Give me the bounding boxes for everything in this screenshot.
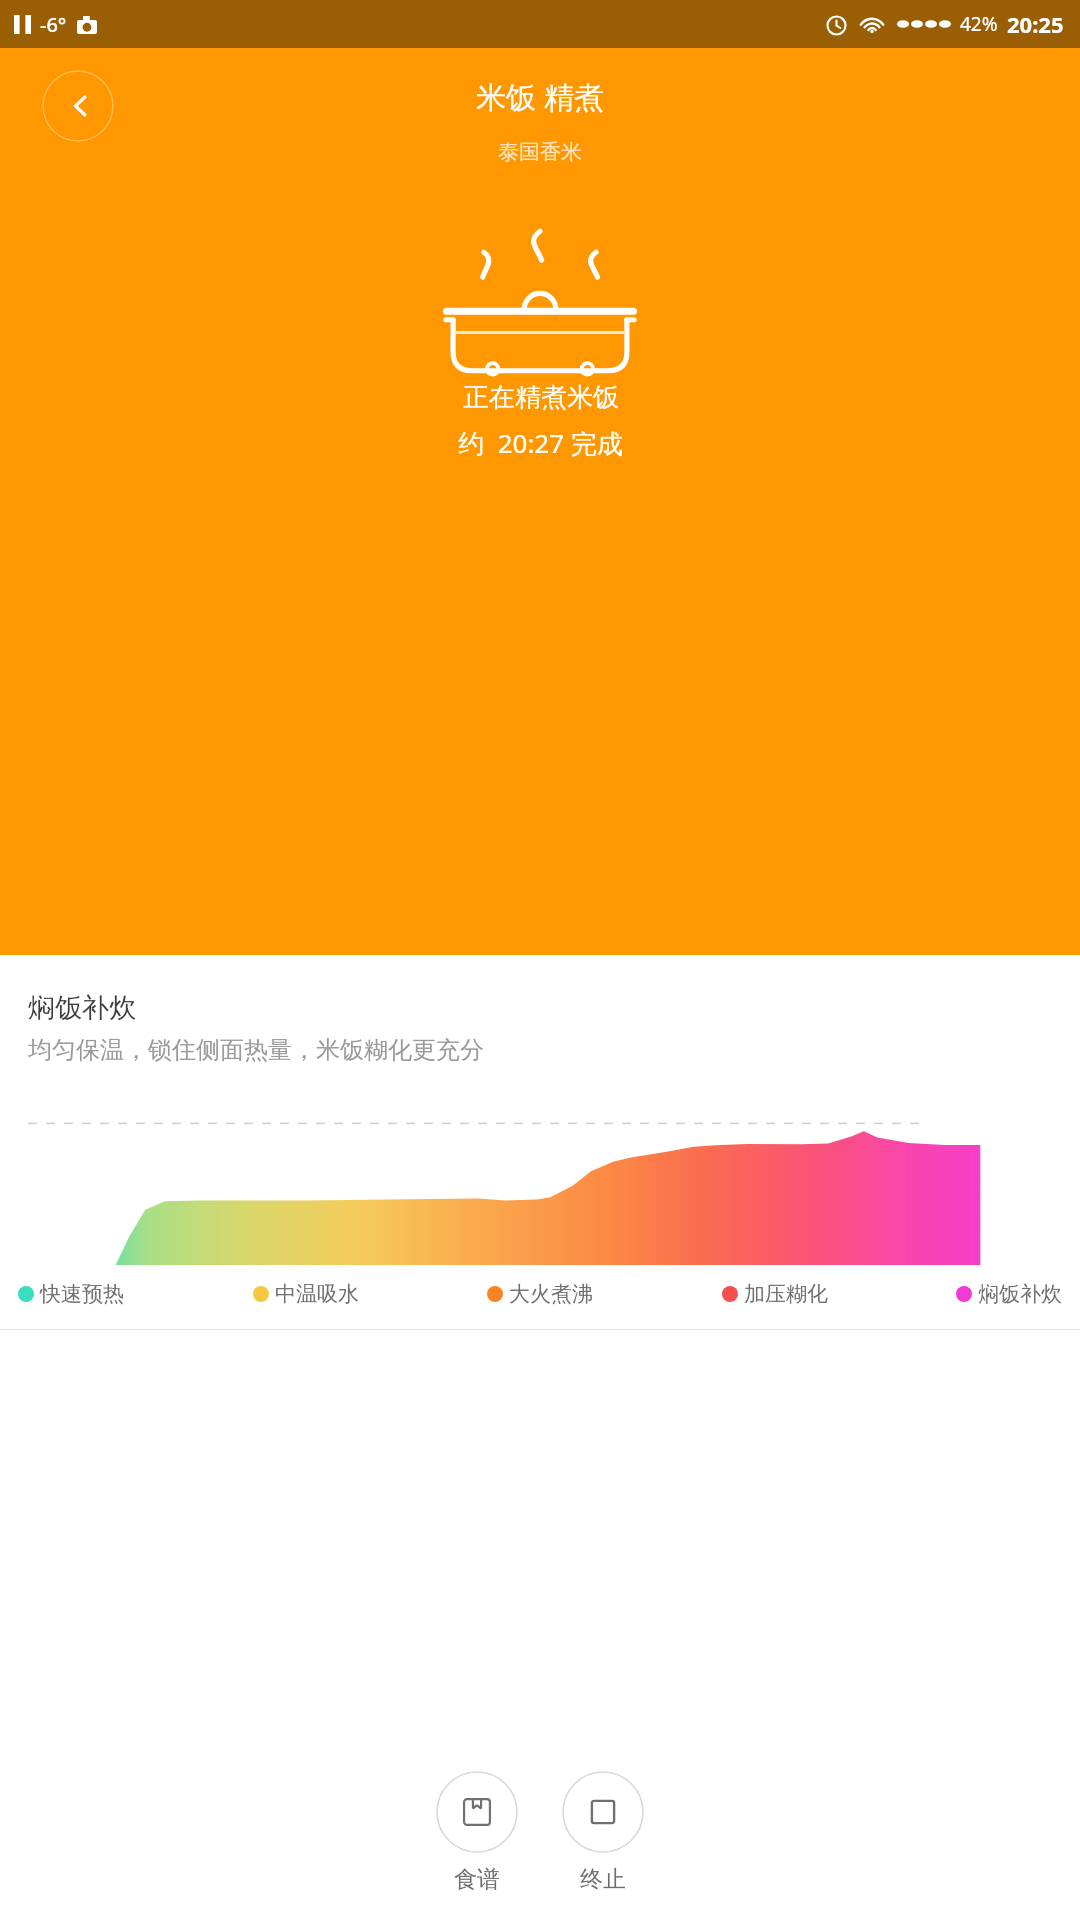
button[interactable]: Back: [42, 70, 114, 142]
staticText: 泰国香米: [498, 139, 582, 165]
staticText: 中温吸水: [275, 1281, 359, 1307]
staticText: 加压糊化: [744, 1281, 828, 1307]
button[interactable]: 终止: [558, 1771, 648, 1894]
staticText: 食谱: [454, 1865, 500, 1894]
staticText: 米饭 精煮: [476, 76, 604, 117]
button[interactable]: 食谱: [432, 1771, 522, 1894]
staticText: 均匀保温，锁住侧面热量，米饭糊化更充分: [28, 1035, 484, 1065]
staticText: 焖饭补炊: [978, 1281, 1062, 1307]
staticText: 焖饭补炊: [28, 991, 136, 1025]
staticText: 终止: [580, 1865, 626, 1894]
staticText: 约 20:27 完成: [458, 425, 623, 461]
staticText: 42%: [960, 11, 998, 37]
staticText: 大火煮沸: [509, 1281, 593, 1307]
staticText: 正在精煮米饭: [463, 381, 619, 414]
staticText: -6°: [40, 11, 67, 38]
staticText: 20:25: [1007, 9, 1064, 39]
staticText: 快速预热: [40, 1281, 124, 1307]
